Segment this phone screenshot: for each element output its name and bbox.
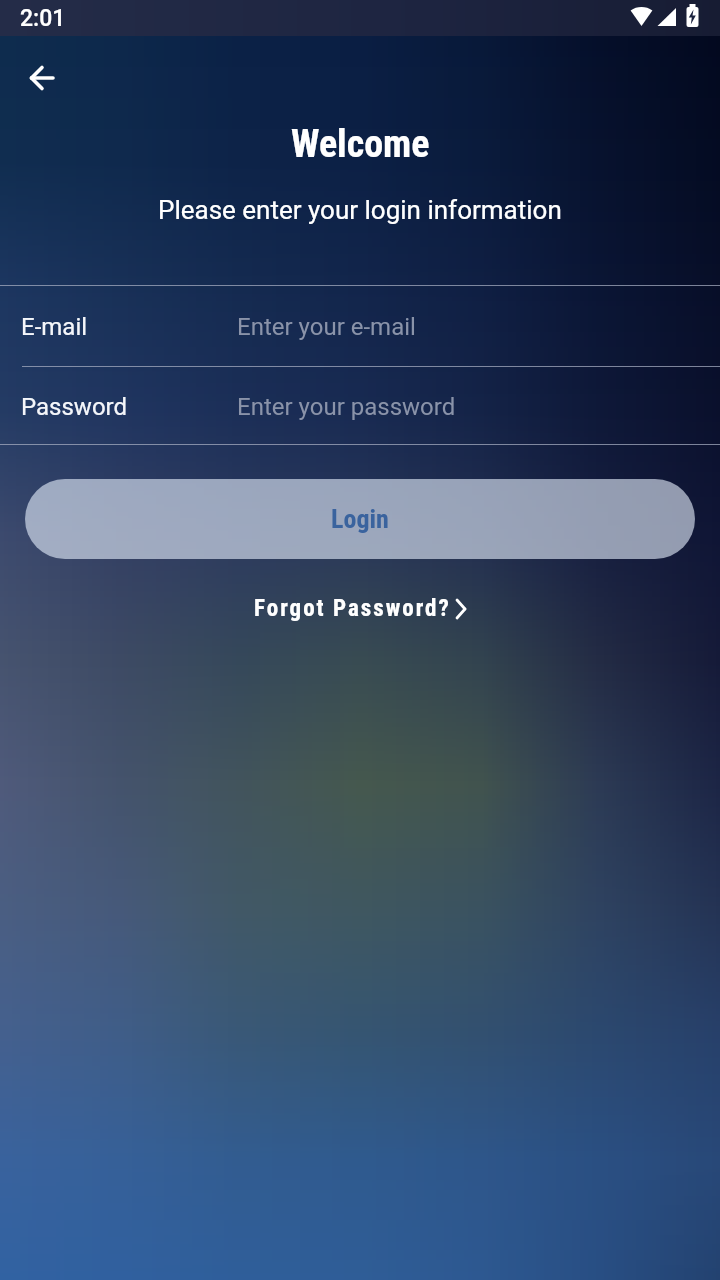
button[interactable]: Login	[25, 479, 695, 559]
button[interactable]: Password	[0, 369, 720, 444]
staticText: Enter your password	[237, 393, 456, 421]
staticText: Forgot Password?	[254, 595, 451, 622]
button[interactable]: Forgot Password?	[254, 595, 467, 622]
button[interactable]	[18, 54, 66, 102]
staticText: Please enter your login information	[158, 195, 562, 225]
staticText: Enter your e-mail	[237, 313, 416, 341]
staticText: Password	[21, 393, 128, 421]
button[interactable]: E-mail	[0, 288, 720, 366]
staticText: Welcome	[291, 122, 430, 167]
staticText: E-mail	[21, 313, 88, 341]
staticText: Login	[331, 504, 389, 534]
staticText: 2:01	[20, 5, 66, 32]
